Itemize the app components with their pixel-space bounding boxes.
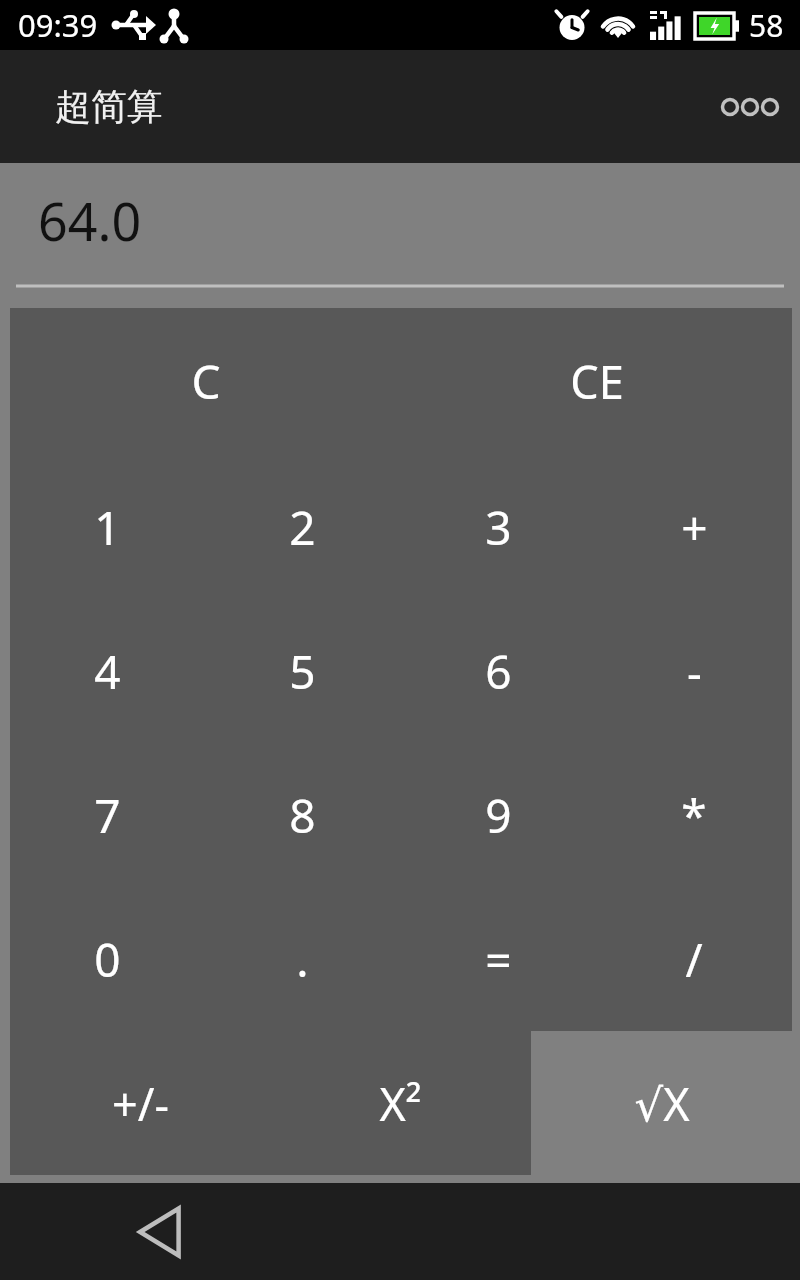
staticText: 1 bbox=[94, 496, 121, 559]
staticText: . bbox=[296, 928, 309, 991]
staticText: 9 bbox=[485, 784, 512, 847]
staticText: 5 bbox=[289, 640, 316, 703]
staticText: 2 bbox=[289, 496, 316, 559]
staticText: - bbox=[687, 640, 702, 703]
button[interactable]: . bbox=[205, 887, 400, 1031]
button[interactable]: = bbox=[400, 887, 596, 1031]
staticText: + bbox=[681, 496, 708, 559]
button[interactable]: Back bbox=[118, 1187, 208, 1277]
button[interactable]: 3 bbox=[400, 455, 596, 599]
staticText: X² bbox=[379, 1073, 422, 1134]
button[interactable]: √X bbox=[531, 1031, 792, 1175]
button[interactable]: +/- bbox=[10, 1031, 270, 1175]
button[interactable]: 8 bbox=[205, 743, 400, 887]
staticText: 7 bbox=[94, 784, 121, 847]
button[interactable]: X² bbox=[270, 1031, 531, 1175]
button[interactable]: 7 bbox=[10, 743, 205, 887]
staticText: 58 bbox=[749, 5, 784, 46]
staticText: C bbox=[191, 350, 221, 413]
button[interactable]: More options bbox=[714, 71, 786, 143]
button[interactable]: / bbox=[596, 887, 792, 1031]
staticText: / bbox=[685, 928, 703, 991]
staticText: √X bbox=[634, 1073, 690, 1134]
button[interactable]: 6 bbox=[400, 599, 596, 743]
staticText: CE bbox=[570, 351, 624, 412]
staticText: 0 bbox=[94, 928, 121, 991]
staticText: 8 bbox=[289, 784, 316, 847]
button[interactable]: 9 bbox=[400, 743, 596, 887]
button[interactable]: 2 bbox=[205, 455, 400, 599]
button[interactable]: 0 bbox=[10, 887, 205, 1031]
staticText: 超简算 bbox=[55, 84, 163, 129]
button[interactable]: C bbox=[10, 308, 401, 455]
staticText: = bbox=[485, 928, 512, 991]
staticText: 3 bbox=[485, 496, 512, 559]
staticText: 4 bbox=[94, 640, 121, 703]
button[interactable]: - bbox=[596, 599, 792, 743]
staticText: 6 bbox=[485, 640, 512, 703]
button[interactable]: 4 bbox=[10, 599, 205, 743]
staticText: 09:39 bbox=[18, 4, 98, 46]
button[interactable]: CE bbox=[401, 308, 792, 455]
staticText: 64.0 bbox=[38, 185, 142, 256]
staticText: +/- bbox=[112, 1073, 169, 1134]
button[interactable]: 5 bbox=[205, 599, 400, 743]
button[interactable]: * bbox=[596, 743, 792, 887]
button[interactable]: + bbox=[596, 455, 792, 599]
button[interactable]: 1 bbox=[10, 455, 205, 599]
staticText: * bbox=[681, 784, 707, 847]
